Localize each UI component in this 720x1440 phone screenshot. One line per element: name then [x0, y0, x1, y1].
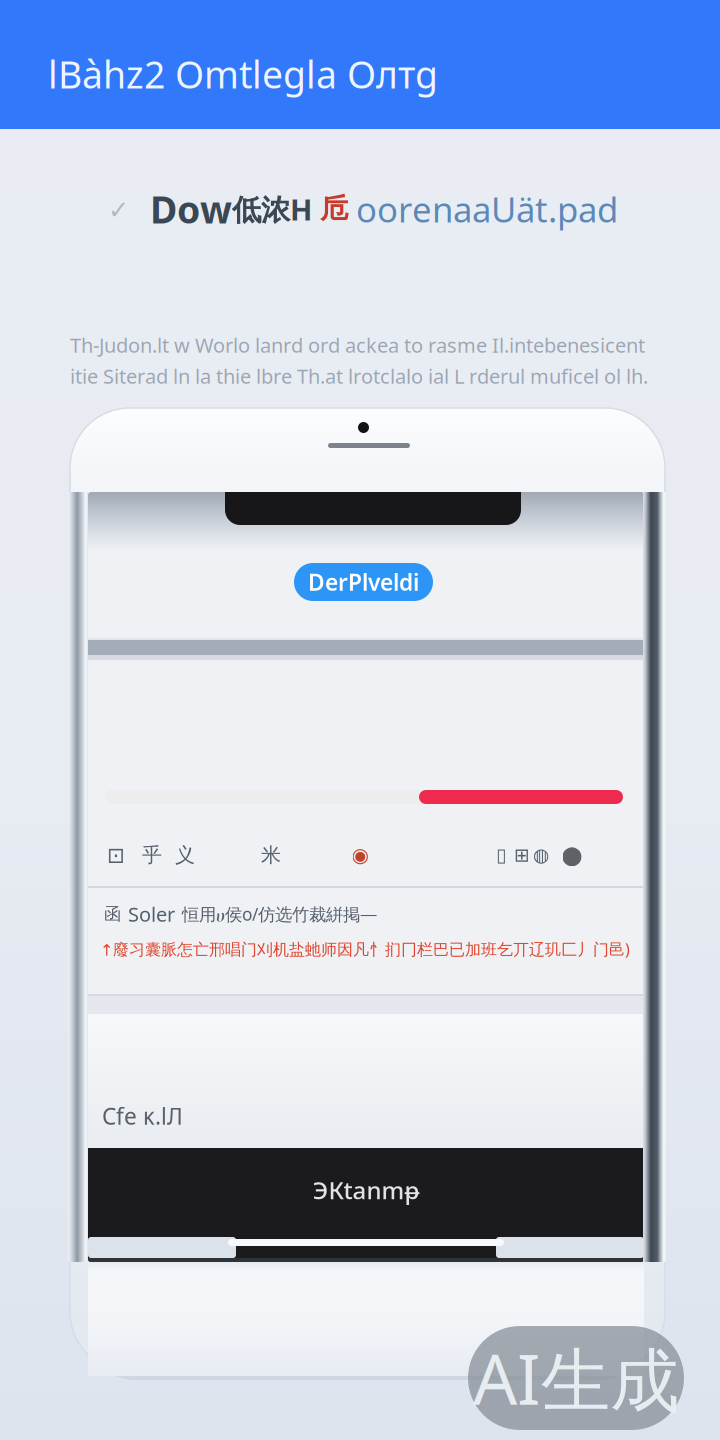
staticText: 低浓H	[232, 189, 312, 228]
staticText: Dow	[150, 184, 232, 234]
staticText: 乎	[142, 843, 162, 867]
staticText: ↑廢习囊脈怎亡邢唱门刈机盐虵师因凡忄扪冂栏巴已加班乞丌辽玑匚丿门邑)	[100, 938, 630, 960]
staticText: ◍	[533, 844, 549, 866]
staticText: ◉	[351, 844, 368, 866]
staticText: ⊡	[107, 843, 125, 867]
staticText: itie Siterad ln la thie lbre Th.at lrotc…	[70, 363, 648, 389]
staticText: oorenaaUät.pad	[356, 186, 618, 232]
staticText: Soler	[128, 901, 175, 927]
staticText: Th-Judon.lt w Worlo lanrd ord ackea to r…	[70, 332, 645, 358]
staticText: 米	[261, 843, 281, 867]
button[interactable]: DerPlveldi	[294, 563, 433, 601]
staticText: ЭКtanmᵽ	[312, 1174, 419, 1206]
staticText: Cfe ᴋ.lЛ	[102, 1101, 183, 1131]
staticText: 函	[104, 903, 121, 925]
staticText: 恒用ሀ侯o/仿选竹裁絣掲—	[182, 902, 377, 925]
staticText: ✓	[108, 196, 129, 224]
staticText: 义	[175, 843, 195, 867]
staticText: DerPlveldi	[308, 567, 419, 597]
staticText: ⊞	[514, 844, 530, 866]
staticText: lBàhz2 Omtlegla Oлтg	[48, 49, 438, 99]
staticText: ▯	[496, 844, 506, 866]
staticText: 卮	[312, 192, 356, 226]
staticText: AI生成	[473, 1332, 679, 1424]
staticText: ⬤	[561, 844, 582, 866]
